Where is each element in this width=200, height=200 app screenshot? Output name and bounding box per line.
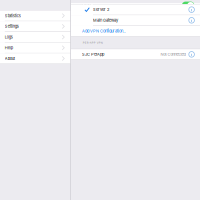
- button[interactable]: Help: [0, 43, 70, 53]
- staticText: Add VPN Configuration...: [82, 29, 126, 33]
- button[interactable]: More Info: [188, 51, 195, 58]
- button[interactable]: VPN: [182, 2, 194, 9]
- staticText: Server 2: [93, 7, 109, 12]
- button[interactable]: Main Gateway: [71, 15, 200, 26]
- staticText: SJC PerApp: [82, 52, 104, 57]
- staticText: PER-APP VPN: [83, 41, 103, 44]
- staticText: Settings: [5, 24, 19, 29]
- button[interactable]: Statistics: [0, 10, 70, 21]
- staticText: VPN: [82, 3, 91, 8]
- button[interactable]: SJC PerApp: [71, 49, 200, 60]
- staticText: Not Connected: [160, 52, 185, 57]
- button[interactable]: More Info: [188, 17, 195, 24]
- button[interactable]: Settings: [0, 21, 70, 32]
- staticText: About: [5, 56, 15, 61]
- button[interactable]: Add VPN Configuration...: [71, 26, 200, 37]
- button[interactable]: About: [0, 53, 70, 64]
- staticText: Statistics: [5, 13, 21, 18]
- button[interactable]: More Info: [188, 6, 195, 13]
- staticText: Logs: [5, 35, 13, 39]
- staticText: Help: [5, 45, 13, 50]
- staticText: Main Gateway: [93, 18, 118, 23]
- button[interactable]: Server 2: [71, 4, 200, 15]
- button[interactable]: Logs: [0, 32, 70, 43]
